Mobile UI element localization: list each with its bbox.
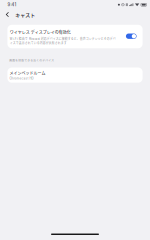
staticText: ワイヤレス ディスプレイの有効化 <box>10 29 71 35</box>
staticText: 画面を投影できる近くのデバイス <box>9 58 54 62</box>
button[interactable]: Enable wireless display <box>126 29 137 39</box>
staticText: 9:41 <box>7 2 16 7</box>
staticText: Wi-Fi 経由で Miracast 対応デバイスに接続すると、音声コンテンツと… <box>10 37 116 45</box>
staticText: キャスト <box>15 11 35 18</box>
button[interactable]: メインベッドルーム <box>7 68 143 83</box>
staticText: Chromecast HD <box>10 77 34 80</box>
button[interactable]: Back <box>4 10 11 19</box>
staticText: メインベッドルーム <box>10 70 46 76</box>
